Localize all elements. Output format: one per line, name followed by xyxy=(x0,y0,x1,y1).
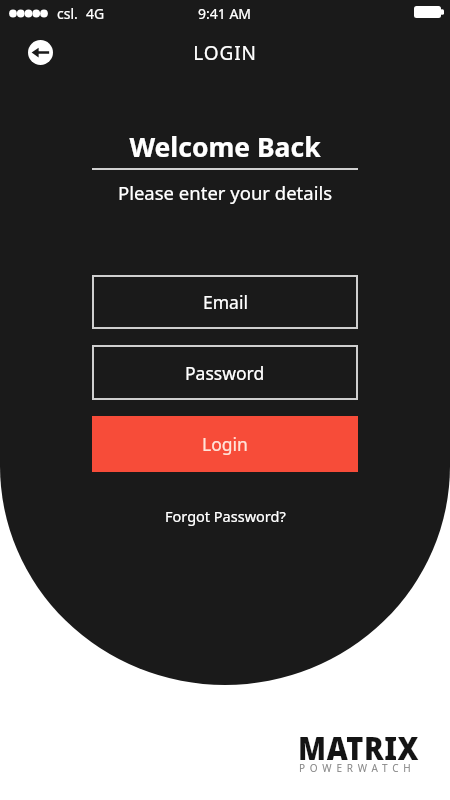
button[interactable]: Login xyxy=(92,416,358,472)
button[interactable]: Password xyxy=(92,345,358,400)
staticText: Password xyxy=(185,361,265,385)
staticText: LOGIN xyxy=(0,40,450,66)
staticText: 9:41 AM xyxy=(198,4,252,23)
staticText: Forgot Password? xyxy=(165,506,286,526)
staticText: Welcome Back xyxy=(0,129,450,165)
staticText: MATRIX xyxy=(298,726,420,769)
staticText: Please enter your details xyxy=(0,180,450,205)
staticText: csl. xyxy=(57,4,78,23)
button[interactable]: Email xyxy=(92,275,358,329)
staticText: Email xyxy=(203,290,248,314)
button[interactable]: Forgot Password? xyxy=(157,502,294,530)
staticText: Login xyxy=(202,432,248,456)
staticText: POWERWATCH xyxy=(299,761,416,775)
button[interactable]: Back xyxy=(28,40,53,65)
staticText: 4G xyxy=(86,4,105,23)
